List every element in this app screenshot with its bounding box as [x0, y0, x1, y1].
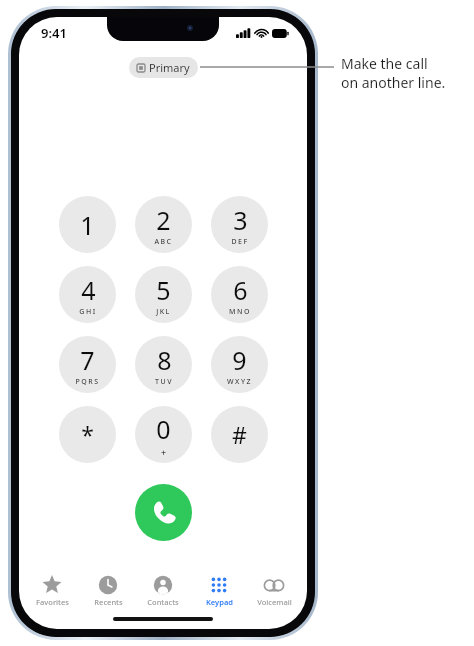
button[interactable]: Recents	[81, 572, 135, 607]
button[interactable]: 2	[135, 196, 192, 253]
staticText: 2	[156, 203, 171, 237]
button[interactable]: 9	[211, 336, 268, 393]
button[interactable]: #	[211, 406, 268, 463]
button[interactable]: 0	[135, 406, 192, 463]
staticText: Recents	[94, 597, 123, 607]
staticText: JKL	[156, 307, 171, 317]
button[interactable]: 5	[135, 266, 192, 323]
button[interactable]: 4	[59, 266, 116, 323]
staticText: *	[81, 419, 94, 450]
staticText: WXYZ	[227, 377, 252, 387]
button[interactable]: 7	[59, 336, 116, 393]
staticText: Contacts	[147, 597, 179, 607]
staticText: GHI	[79, 307, 97, 317]
staticText: 6	[233, 273, 248, 307]
staticText: 9	[232, 343, 247, 377]
staticText: MNO	[229, 307, 251, 317]
button[interactable]: 1	[59, 196, 116, 253]
button[interactable]: 6	[211, 266, 268, 323]
staticText: on another line.	[341, 73, 446, 92]
button[interactable]: Primary	[129, 57, 198, 78]
staticText: 3	[233, 203, 248, 237]
staticText: Voicemail	[257, 597, 292, 607]
staticText: Make the call	[341, 54, 428, 73]
staticText: Favorites	[36, 597, 69, 607]
staticText: PQRS	[75, 377, 100, 387]
staticText: 8	[157, 343, 172, 377]
button[interactable]: Keypad	[192, 572, 246, 607]
button[interactable]: Call	[135, 484, 192, 541]
staticText: 4	[81, 273, 96, 307]
staticText: 1	[80, 208, 95, 242]
button[interactable]: 3	[211, 196, 268, 253]
button[interactable]: Favorites	[25, 572, 79, 607]
button[interactable]: Voicemail	[247, 572, 301, 607]
button[interactable]: *	[59, 406, 116, 463]
staticText: +	[161, 446, 167, 458]
staticText: ABC	[154, 237, 173, 247]
staticText: Keypad	[206, 597, 233, 607]
staticText: 9:41	[41, 24, 67, 42]
staticText: TUV	[155, 377, 173, 387]
staticText: DEF	[231, 237, 249, 247]
staticText: 0	[156, 412, 171, 446]
staticText: 5	[156, 273, 171, 307]
staticText: Primary	[149, 60, 190, 75]
button[interactable]: Contacts	[136, 572, 190, 607]
button[interactable]: 8	[135, 336, 192, 393]
staticText: #	[232, 419, 247, 450]
staticText: 7	[80, 343, 95, 377]
